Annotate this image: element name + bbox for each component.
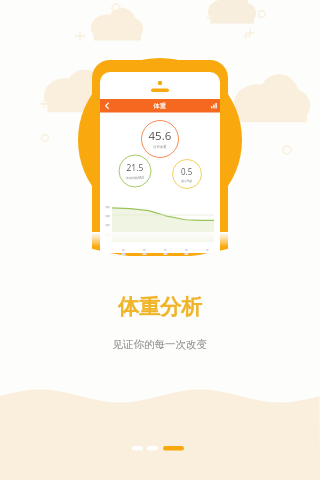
other: Weight analysis onboarding page xyxy=(0,0,320,480)
